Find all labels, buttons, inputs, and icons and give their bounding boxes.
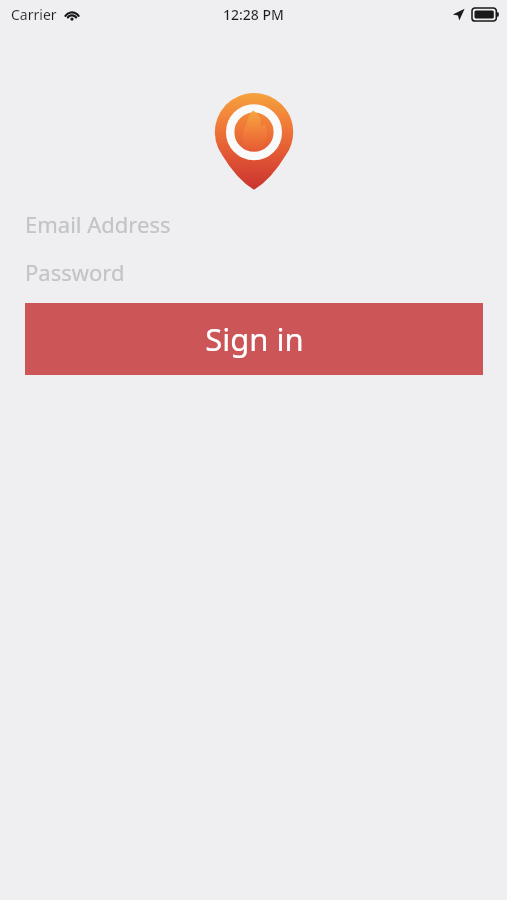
staticText: 12:28 PM bbox=[223, 5, 284, 24]
staticText: Email Address bbox=[25, 209, 171, 239]
staticText: Password bbox=[25, 257, 125, 287]
staticText: Carrier bbox=[11, 5, 57, 24]
staticText: Sign in bbox=[205, 318, 304, 360]
button[interactable]: Password bbox=[0, 250, 507, 294]
button[interactable]: Sign in bbox=[25, 303, 483, 375]
other: App logo bbox=[205, 84, 303, 196]
button[interactable]: Email Address bbox=[0, 202, 507, 246]
